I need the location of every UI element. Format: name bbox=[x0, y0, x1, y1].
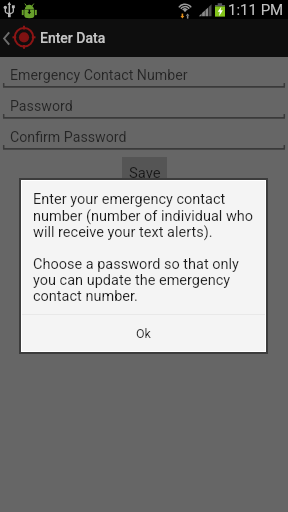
staticText: Enter your emergency contact number (num… bbox=[33, 191, 257, 304]
button[interactable]: Password bbox=[0, 91, 288, 122]
button[interactable]: Save bbox=[122, 157, 167, 187]
staticText: Emergency Contact Number bbox=[10, 67, 188, 84]
staticText: Enter Data bbox=[40, 30, 106, 46]
staticText: Ok bbox=[136, 326, 151, 341]
button[interactable]: Navigate up bbox=[0, 19, 288, 57]
button[interactable]: Ok bbox=[22, 315, 265, 351]
staticText: 1:11 PM bbox=[228, 1, 284, 19]
button[interactable]: Confirm Password bbox=[0, 122, 288, 153]
button[interactable]: Emergency Contact Number bbox=[0, 60, 288, 91]
staticText: Save bbox=[129, 164, 161, 181]
staticText: Password bbox=[10, 98, 73, 115]
staticText: Confirm Password bbox=[10, 129, 127, 146]
